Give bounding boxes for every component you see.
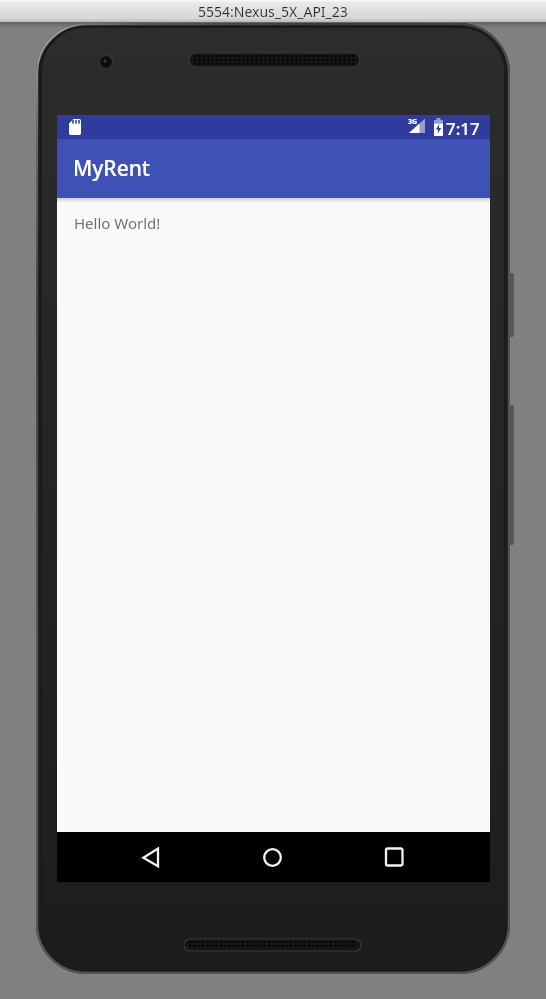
button[interactable]: [252, 832, 294, 882]
staticText: Hello World!: [74, 213, 161, 233]
staticText: 5554:Nexus_5X_API_23: [198, 2, 348, 21]
staticText: 3G: [408, 117, 418, 127]
button[interactable]: [373, 832, 415, 882]
button[interactable]: [130, 832, 172, 882]
staticText: 7:17: [446, 117, 480, 140]
staticText: MyRent: [73, 154, 150, 183]
